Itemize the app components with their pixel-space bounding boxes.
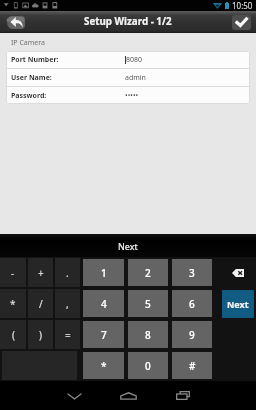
staticText: 3 (189, 266, 195, 280)
button[interactable]: # (172, 352, 212, 379)
button[interactable]: 9 (172, 321, 212, 348)
staticText: Port Number: (11, 55, 59, 65)
staticText: admin (125, 73, 146, 83)
button[interactable]: , (55, 289, 80, 318)
button[interactable]: Next (118, 240, 138, 252)
staticText: ) (39, 328, 42, 342)
staticText: 8080 (126, 55, 143, 65)
staticText: 1 (101, 266, 107, 280)
button[interactable]: Home (110, 381, 146, 410)
staticText: 0 (145, 359, 151, 373)
button[interactable]: ( (0, 320, 26, 349)
button[interactable]: Recents (165, 381, 201, 410)
staticText: / (39, 297, 43, 311)
button[interactable]: 0 (128, 352, 168, 379)
staticText: Password: (11, 91, 47, 101)
button[interactable]: = (55, 320, 80, 349)
staticText: 9 (189, 328, 195, 342)
button[interactable]: * (0, 289, 26, 318)
button[interactable]: * (83, 352, 124, 379)
button[interactable]: 1 (83, 259, 124, 286)
staticText: - (11, 266, 15, 280)
staticText: * (10, 297, 16, 311)
staticText: . (66, 266, 69, 280)
staticText: * (101, 359, 107, 373)
staticText: Setup Wizard - 1/2 (84, 15, 172, 28)
button[interactable]: . (55, 258, 80, 287)
staticText: ( (12, 328, 15, 342)
staticText: + (38, 266, 44, 280)
button[interactable]: Delete (222, 259, 254, 287)
button[interactable]: 2 (128, 259, 168, 286)
button[interactable]: Next (222, 290, 254, 318)
staticText: 5 (145, 297, 151, 311)
button[interactable]: ) (28, 320, 53, 349)
button[interactable]: 8 (128, 321, 168, 348)
button[interactable]: 5 (128, 290, 168, 317)
button[interactable]: Port Number: (6, 51, 250, 68)
button[interactable]: 3 (172, 259, 212, 286)
staticText: 6 (189, 297, 195, 311)
button[interactable]: Password: (6, 87, 250, 104)
staticText: User Name: (11, 73, 52, 83)
staticText: , (66, 297, 69, 311)
button[interactable]: / (28, 289, 53, 318)
button[interactable]: 7 (83, 321, 124, 348)
button[interactable]: 4 (83, 290, 124, 317)
button[interactable]: Back (6, 16, 25, 29)
button[interactable]: Back (56, 381, 92, 410)
staticText: 2 (145, 266, 151, 280)
button[interactable]: Done (232, 15, 251, 30)
staticText: # (189, 359, 196, 373)
button[interactable]: - (0, 258, 26, 287)
staticText: 8 (145, 328, 151, 342)
staticText: ••••• (125, 91, 139, 101)
button[interactable]: + (28, 258, 53, 287)
button[interactable]: 6 (172, 290, 212, 317)
staticText: 10:50 (232, 0, 253, 11)
staticText: IP Camera (11, 38, 45, 48)
staticText: = (65, 328, 71, 342)
staticText: Next (227, 298, 249, 310)
staticText: 7 (101, 328, 107, 342)
staticText: 4 (101, 297, 107, 311)
button[interactable]: User Name: (6, 69, 250, 86)
staticText: Next (118, 240, 138, 252)
